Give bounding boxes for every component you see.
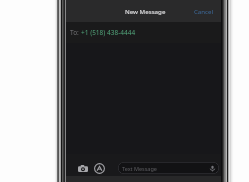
button[interactable]: Camera bbox=[75, 162, 90, 174]
staticText: Cancel bbox=[194, 7, 213, 15]
staticText: New Message bbox=[125, 7, 166, 15]
button[interactable]: To: bbox=[66, 22, 221, 43]
staticText: Text Message bbox=[122, 165, 157, 172]
button[interactable]: Cancel bbox=[186, 3, 221, 19]
staticText: +1 (518) 438-4444 bbox=[81, 28, 136, 37]
staticText: To: bbox=[70, 28, 81, 37]
button[interactable]: Dictate bbox=[208, 164, 216, 172]
button[interactable]: Text Message bbox=[118, 162, 219, 174]
button[interactable]: Apps bbox=[92, 162, 107, 174]
